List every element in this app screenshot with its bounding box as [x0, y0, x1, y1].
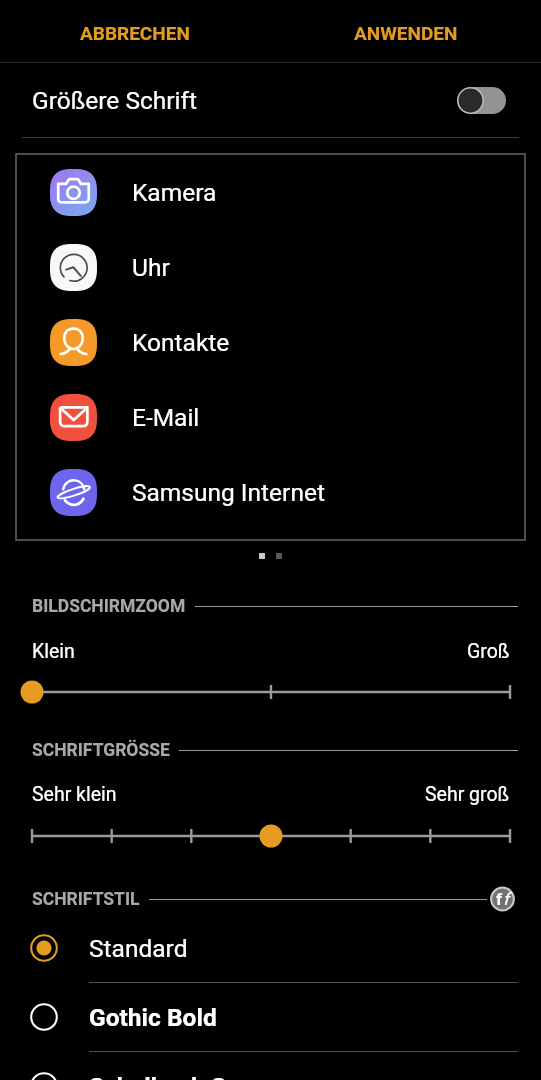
staticText: E-Mail	[132, 403, 200, 432]
staticText: Uhr	[132, 253, 170, 282]
staticText: SCHRIFTSTIL	[32, 889, 140, 910]
button[interactable]: Größere Schrift	[0, 64, 541, 136]
button[interactable]: Kamera	[16, 155, 525, 230]
staticText: Kamera	[132, 178, 217, 207]
button[interactable]: ABBRECHEN	[0, 2, 270, 64]
staticText: f	[496, 889, 503, 909]
staticText: ABBRECHEN	[80, 22, 190, 44]
staticText: Schulbuch Sans	[89, 1072, 266, 1080]
staticText: Gothic Bold	[89, 1003, 217, 1032]
staticText: f	[503, 889, 509, 909]
button[interactable]: Standard	[0, 920, 541, 976]
staticText: Kontakte	[132, 328, 230, 357]
staticText: Groß	[467, 640, 510, 663]
button[interactable]: Uhr	[16, 230, 525, 305]
button[interactable]: Slider	[0, 820, 541, 852]
button[interactable]: Font style preview	[487, 886, 518, 912]
staticText: Sehr klein	[32, 783, 117, 806]
staticText: Samsung Internet	[132, 478, 325, 507]
button[interactable]: Slider	[0, 676, 541, 708]
staticText: Sehr groß	[425, 783, 510, 806]
button[interactable]: Schulbuch Sans	[0, 1058, 541, 1080]
staticText: BILDSCHIRMZOOM	[32, 596, 186, 617]
button[interactable]: Samsung Internet	[16, 455, 525, 530]
staticText: Klein	[32, 640, 75, 663]
button[interactable]: Kontakte	[16, 305, 525, 380]
staticText: Standard	[89, 934, 188, 963]
button[interactable]: Gothic Bold	[0, 989, 541, 1045]
button[interactable]: E-Mail	[16, 380, 525, 455]
staticText: ANWENDEN	[354, 22, 458, 44]
staticText: SCHRIFTGRÖSSE	[32, 740, 170, 761]
staticText: Größere Schrift	[32, 86, 198, 115]
button[interactable]: ANWENDEN	[270, 2, 541, 64]
